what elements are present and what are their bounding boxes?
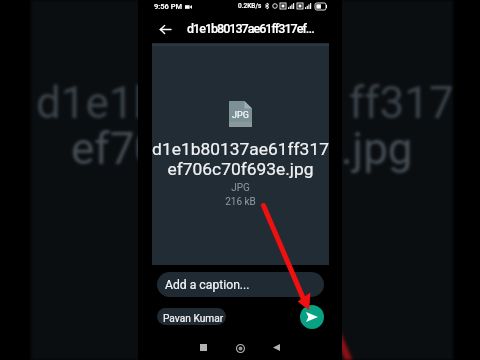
staticText: JPG: [232, 110, 249, 121]
button[interactable]: Add a caption...: [157, 272, 324, 297]
staticText: 0.2KB/s: [238, 2, 262, 10]
button[interactable]: Recent apps: [191, 335, 215, 359]
staticText: Add a caption...: [165, 278, 250, 292]
staticText: d1e1b: [36, 77, 159, 129]
staticText: ef70: [71, 123, 160, 175]
button[interactable]: Send: [300, 305, 324, 329]
button[interactable]: Back: [264, 335, 288, 359]
staticText: 9:56 PM: [154, 2, 182, 11]
staticText: Pavan Kumar: [163, 313, 224, 325]
staticText: ff317: [349, 77, 454, 129]
button[interactable]: Pavan Kumar: [157, 308, 226, 325]
button[interactable]: Back: [153, 17, 177, 41]
staticText: d1e1b80137ae61ff317 ef706c70f693e.jpg: [152, 139, 329, 179]
staticText: d1e1b80137ae61ff317ef…: [187, 21, 314, 36]
button[interactable]: Home: [228, 336, 252, 360]
staticText: JPG 216 kB: [152, 182, 329, 208]
staticText: .jpg: [341, 123, 413, 175]
